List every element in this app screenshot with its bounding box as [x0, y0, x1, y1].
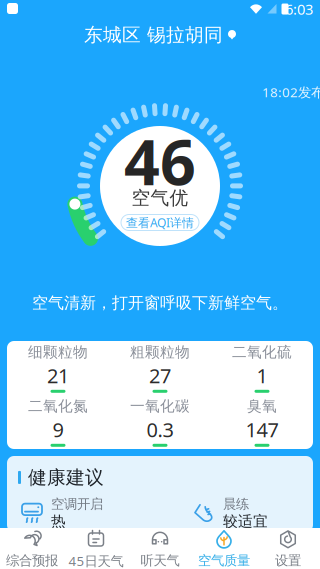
staticText: 听天气	[140, 552, 179, 569]
button[interactable]: 设置	[256, 528, 320, 569]
button[interactable]: 空气质量	[192, 528, 256, 569]
staticText: 二氧化氮	[28, 397, 88, 415]
staticText: 空气清新，打开窗呼吸下新鲜空气。	[32, 293, 288, 313]
staticText: 空气优	[131, 186, 188, 209]
staticText: 9	[52, 416, 63, 443]
staticText: 热	[51, 512, 66, 530]
staticText: 查看AQI详情	[126, 214, 194, 230]
staticText: 0.3	[146, 416, 173, 443]
button[interactable]: 综合预报	[0, 528, 64, 569]
staticText: 21	[47, 362, 69, 389]
staticText: 粗颗粒物	[130, 343, 190, 361]
staticText: 臭氧	[247, 397, 277, 415]
staticText: 空调开启	[51, 496, 103, 512]
staticText: 细颗粒物	[28, 343, 88, 361]
staticText: 6:03	[285, 0, 313, 19]
staticText: 设置	[275, 552, 301, 569]
staticText: 二氧化硫	[232, 343, 292, 361]
staticText: 晨练	[223, 496, 249, 512]
staticText: 46	[124, 119, 196, 203]
button[interactable]: 听天气	[128, 528, 192, 569]
staticText: 综合预报	[6, 552, 58, 569]
button[interactable]: 45日天气	[64, 528, 128, 569]
staticText: 1	[256, 362, 267, 389]
staticText: 一氧化碳	[130, 397, 190, 415]
staticText: 27	[149, 362, 171, 389]
staticText: 东城区 锡拉胡同	[84, 23, 223, 46]
staticText: 较适宜	[223, 512, 268, 530]
staticText: 健康建议	[28, 466, 104, 489]
staticText: 45日天气	[68, 552, 123, 569]
button[interactable]: 查看AQI详情	[121, 214, 199, 230]
staticText: 18:02发布	[262, 83, 320, 101]
staticText: 空气质量	[198, 552, 250, 569]
staticText: 147	[245, 416, 278, 443]
